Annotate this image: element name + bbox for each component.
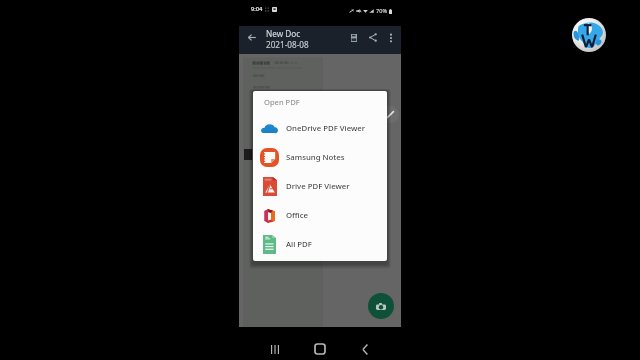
- staticText: OneDrive PDF Viewer: [286, 123, 366, 134]
- button[interactable]: OneDrive PDF Viewer: [253, 114, 387, 143]
- button[interactable]: Back: [243, 29, 260, 46]
- button[interactable]: Samsung Notes: [253, 143, 387, 172]
- button[interactable]: Office: [253, 201, 387, 230]
- staticText: 2021-08-08: [266, 39, 309, 50]
- button[interactable]: Take photo: [368, 293, 394, 319]
- staticText: 70%: [376, 7, 388, 15]
- staticText: Drive PDF Viewer: [286, 181, 350, 192]
- button[interactable]: All PDF: [253, 230, 387, 259]
- button[interactable]: More options: [382, 29, 399, 46]
- staticText: All PDF: [286, 239, 312, 250]
- staticText: Open PDF: [264, 97, 300, 107]
- staticText: Samsung Notes: [286, 152, 345, 163]
- button[interactable]: Drive PDF Viewer: [253, 172, 387, 201]
- button[interactable]: Back: [352, 336, 378, 360]
- staticText: Office: [286, 210, 309, 221]
- button[interactable]: Edit: [382, 106, 399, 123]
- button[interactable]: Share: [364, 29, 381, 46]
- staticText: New Doc: [266, 28, 301, 39]
- button[interactable]: Save as PDF: [345, 29, 362, 46]
- button[interactable]: Recent apps: [262, 336, 288, 360]
- button[interactable]: Home: [307, 336, 333, 360]
- staticText: 9:04: [251, 5, 263, 13]
